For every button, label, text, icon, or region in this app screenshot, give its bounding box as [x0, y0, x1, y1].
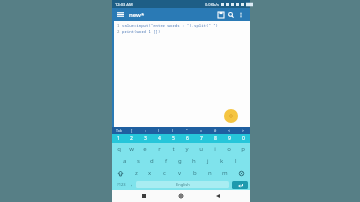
staticText: ( [158, 128, 160, 133]
button[interactable]: Tab [112, 127, 125, 134]
staticText: # [214, 128, 217, 133]
button[interactable]: Navigation menu [116, 10, 125, 19]
staticText: 2 [117, 29, 120, 34]
button[interactable]: e [138, 143, 152, 155]
button[interactable]: [ [125, 127, 138, 134]
button[interactable]: q [112, 143, 125, 155]
staticText: z [135, 169, 138, 177]
button[interactable]: f [159, 155, 173, 167]
button[interactable]: 6 [180, 134, 194, 143]
button[interactable]: Back [139, 191, 149, 201]
button[interactable]: 3 [138, 134, 152, 143]
button[interactable]: v [172, 167, 187, 179]
staticText: c [163, 169, 166, 177]
button[interactable]: 8 [208, 134, 222, 143]
button[interactable]: c [157, 167, 172, 179]
button[interactable]: Enter [232, 181, 248, 189]
button[interactable]: Shift [112, 167, 129, 179]
button[interactable]: Backspace [232, 167, 250, 179]
button[interactable]: 1 [112, 134, 125, 143]
staticText: f [165, 157, 168, 165]
button[interactable]: " [180, 127, 194, 134]
staticText: 7 [200, 135, 203, 142]
staticText: 2 [130, 135, 133, 142]
staticText: 0 [242, 135, 245, 142]
button[interactable]: 4 [152, 134, 166, 143]
button[interactable]: r [152, 143, 166, 155]
staticText: y [185, 145, 189, 153]
staticText: o [227, 145, 231, 153]
staticText: l [235, 157, 237, 165]
button[interactable]: < [222, 127, 236, 134]
button[interactable]: > [236, 127, 250, 134]
staticText: r [158, 145, 161, 153]
staticText: 9 [228, 135, 231, 142]
staticText: s [137, 157, 140, 165]
button[interactable]: k [215, 155, 229, 167]
staticText: t [172, 145, 175, 153]
button[interactable]: Home [176, 191, 186, 201]
staticText: , [131, 181, 133, 188]
button[interactable]: 5 [166, 134, 180, 143]
button[interactable]: l [229, 155, 243, 167]
staticText: " [186, 128, 188, 133]
button[interactable]: j [201, 155, 215, 167]
staticText: 3 [144, 135, 147, 142]
staticText: n [208, 169, 212, 177]
button[interactable]: Search [226, 10, 236, 20]
button[interactable]: m [217, 167, 232, 179]
button[interactable]: , [128, 179, 136, 190]
button[interactable]: ?123 [114, 179, 128, 190]
button[interactable]: y [180, 143, 194, 155]
button[interactable]: More options [236, 10, 246, 20]
staticText: b [193, 169, 197, 177]
button[interactable]: i [208, 143, 222, 155]
staticText: u [199, 145, 203, 153]
button[interactable]: = [194, 127, 208, 134]
staticText: 1 [117, 135, 120, 142]
button[interactable]: English [136, 181, 229, 188]
staticText: [ [131, 128, 133, 133]
staticText: Tab [116, 128, 122, 133]
button[interactable]: Save [216, 10, 226, 20]
button[interactable]: x [143, 167, 157, 179]
button[interactable]: 0 [236, 134, 250, 143]
staticText: v [178, 169, 182, 177]
button[interactable]: t [166, 143, 180, 155]
button[interactable]: n [202, 167, 217, 179]
staticText: 12:03 AM [115, 2, 133, 7]
staticText: p [241, 145, 245, 153]
staticText: 0.0Kb/s [205, 2, 219, 7]
button[interactable]: Run [224, 109, 238, 123]
staticText: new* [129, 11, 145, 19]
button[interactable]: 9 [222, 134, 236, 143]
button[interactable]: 7 [194, 134, 208, 143]
button[interactable]: o [222, 143, 236, 155]
staticText: ?123 [117, 182, 126, 187]
button[interactable]: g [173, 155, 187, 167]
button[interactable]: s [131, 155, 145, 167]
button[interactable]: h [187, 155, 201, 167]
button[interactable]: ) [166, 127, 180, 134]
staticText: 1 [117, 23, 120, 28]
staticText: k [220, 157, 224, 165]
staticText: ) [172, 128, 174, 133]
staticText: a [123, 157, 127, 165]
button[interactable]: Recent apps [213, 191, 223, 201]
button[interactable]: b [187, 167, 202, 179]
button[interactable]: u [194, 143, 208, 155]
staticText: = [200, 128, 203, 133]
button[interactable]: a [118, 155, 131, 167]
staticText: English [176, 182, 190, 187]
button[interactable]: p [236, 143, 250, 155]
button[interactable]: 2 [125, 134, 138, 143]
staticText: w [129, 145, 134, 153]
staticText: value=input("enter words : ").split(" ") [122, 23, 218, 28]
staticText: 5 [172, 135, 175, 142]
button[interactable]: ( [152, 127, 166, 134]
button[interactable]: w [125, 143, 138, 155]
button[interactable]: : [138, 127, 152, 134]
button[interactable]: # [208, 127, 222, 134]
button[interactable]: z [129, 167, 143, 179]
button[interactable]: d [145, 155, 159, 167]
